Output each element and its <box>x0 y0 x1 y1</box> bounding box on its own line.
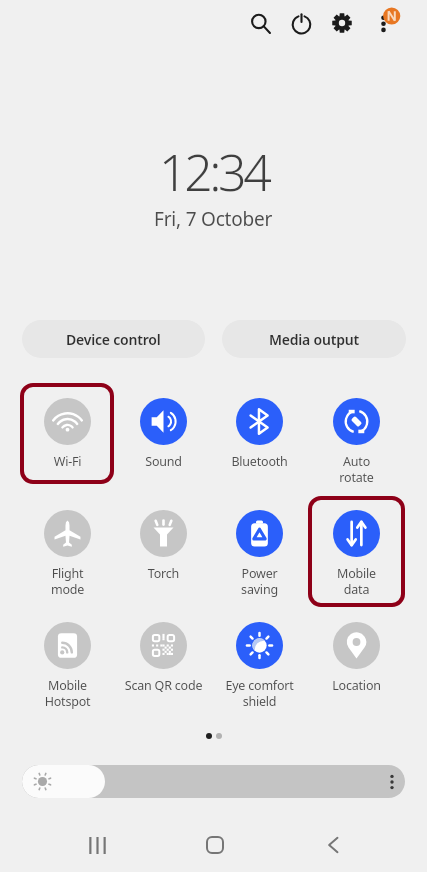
button[interactable] <box>22 765 405 798</box>
button[interactable]: Media output <box>222 320 406 358</box>
staticText: Wi-Fi <box>20 453 115 470</box>
staticText: Eye comfort shield <box>212 677 307 709</box>
button[interactable]: More options <box>371 3 405 37</box>
button[interactable]: Device control <box>22 320 205 358</box>
button[interactable]: Home <box>195 825 235 865</box>
staticText: Bluetooth <box>212 453 307 470</box>
button[interactable]: Settings <box>324 5 360 41</box>
staticText: Torch <box>116 565 211 582</box>
staticText: Auto rotate <box>309 453 404 485</box>
staticText: Device control <box>66 330 161 349</box>
staticText: Location <box>309 677 404 694</box>
staticText: 12:34 <box>159 138 269 206</box>
staticText: Flight mode <box>20 565 115 597</box>
button[interactable]: Scan QR code <box>116 622 211 694</box>
button[interactable]: Mobile Hotspot <box>20 622 115 709</box>
button[interactable]: Auto rotate <box>309 398 404 485</box>
staticText: Mobile data <box>309 565 404 597</box>
button[interactable]: Mobile data <box>309 510 404 597</box>
button[interactable]: Location <box>309 622 404 694</box>
button[interactable]: Back <box>313 825 353 865</box>
button[interactable]: Power off <box>283 5 319 41</box>
button[interactable]: Power saving <box>212 510 307 597</box>
button[interactable]: Search <box>242 5 278 41</box>
button[interactable]: Eye comfort shield <box>212 622 307 709</box>
button[interactable]: Torch <box>116 510 211 582</box>
staticText: Power saving <box>212 565 307 597</box>
staticText: Sound <box>116 453 211 470</box>
staticText: Media output <box>269 330 359 349</box>
staticText: Mobile Hotspot <box>20 677 115 709</box>
button[interactable]: Wi-Fi <box>20 398 115 470</box>
button[interactable]: Recents <box>77 825 117 865</box>
staticText: Fri, 7 October <box>154 206 273 232</box>
button[interactable]: Flight mode <box>20 510 115 597</box>
staticText: Scan QR code <box>116 677 211 694</box>
button[interactable]: Bluetooth <box>212 398 307 470</box>
button[interactable]: Sound <box>116 398 211 470</box>
